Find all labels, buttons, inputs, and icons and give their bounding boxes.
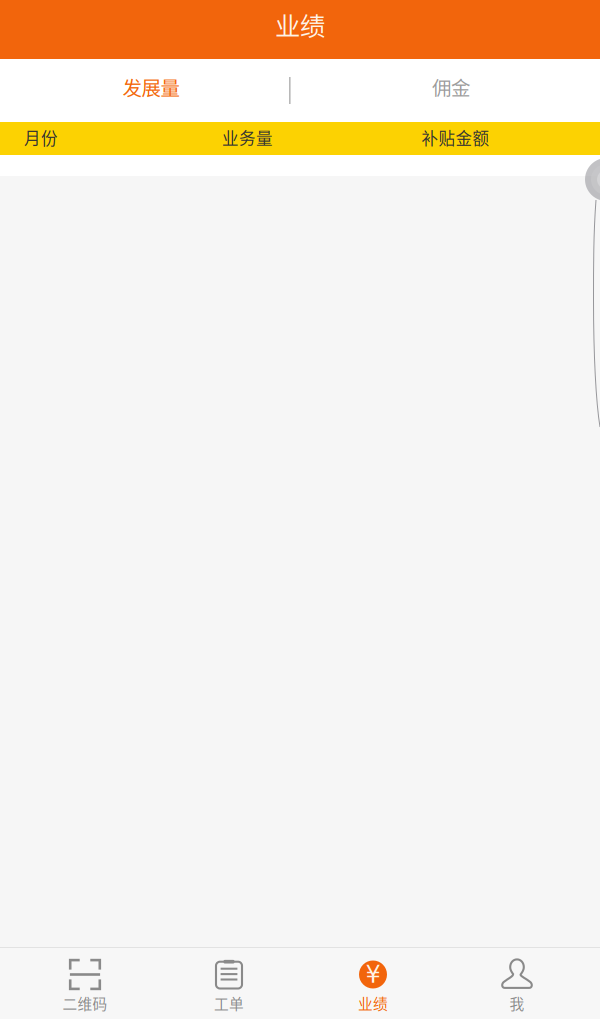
staticText: 我 [509, 992, 524, 1014]
staticText: ¥ [365, 960, 380, 988]
button[interactable]: Floating shortcut [585, 158, 600, 201]
staticText: 补贴金额 [421, 125, 489, 149]
button[interactable]: 佣金 [302, 59, 600, 119]
staticText: 工单 [214, 992, 244, 1014]
staticText: 月份 [24, 125, 58, 149]
staticText: 业务量 [222, 125, 273, 149]
button[interactable]: 我 [445, 938, 589, 1019]
staticText: 佣金 [432, 73, 470, 101]
staticText: 二维码 [62, 992, 107, 1014]
button[interactable]: ¥ [301, 938, 445, 1019]
button[interactable]: 发展量 [0, 59, 302, 119]
staticText: 发展量 [122, 73, 179, 101]
button[interactable]: 二维码 [13, 938, 157, 1019]
staticText: 业绩 [358, 992, 388, 1014]
staticText: 业绩 [275, 6, 325, 43]
button[interactable]: 工单 [157, 938, 301, 1019]
